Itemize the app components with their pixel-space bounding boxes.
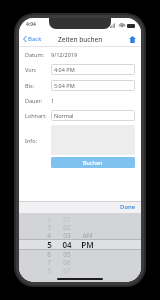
- staticText: 4:04: [26, 21, 36, 28]
- staticText: AM: [82, 231, 93, 239]
- staticText: 6: [47, 250, 51, 258]
- staticText: Zeiten buchen: [58, 35, 103, 44]
- button[interactable]: 5:04 PM: [51, 80, 135, 91]
- staticText: 3: [47, 223, 51, 231]
- staticText: 03: [63, 231, 71, 239]
- staticText: 02: [63, 223, 71, 231]
- staticText: 5: [47, 239, 52, 250]
- staticText: 4: [47, 231, 51, 239]
- staticText: Dauer:: [25, 97, 51, 104]
- staticText: Info:: [25, 137, 51, 144]
- staticText: 05: [63, 250, 71, 258]
- button[interactable]: 4:04 PM: [51, 64, 135, 75]
- button[interactable]: Home: [124, 33, 141, 46]
- staticText: Datum:: [25, 51, 51, 58]
- staticText: Buchen: [83, 159, 103, 166]
- staticText: 4:04 PM: [54, 66, 75, 73]
- staticText: Done: [120, 203, 136, 211]
- button[interactable]: Normal: [51, 110, 135, 121]
- staticText: 01: [63, 215, 71, 223]
- staticText: 1: [51, 97, 55, 104]
- staticText: 5:04 PM: [54, 82, 75, 89]
- staticText: 07: [63, 266, 71, 274]
- staticText: 2: [47, 215, 51, 223]
- staticText: Lohnart:: [25, 112, 51, 119]
- staticText: 8: [47, 266, 51, 274]
- staticText: 04: [62, 239, 72, 250]
- staticText: Bis:: [25, 82, 51, 89]
- staticText: 9/12/2019: [51, 51, 78, 58]
- button[interactable]: Done: [115, 201, 141, 213]
- staticText: PM: [81, 239, 94, 250]
- button[interactable]: 01: [57, 213, 77, 275]
- staticText: Back: [28, 35, 42, 43]
- staticText: Von:: [25, 66, 51, 73]
- button[interactable]: Back: [19, 33, 46, 45]
- staticText: 7: [47, 258, 51, 266]
- staticText: Normal: [54, 112, 74, 119]
- staticText: 06: [63, 258, 71, 266]
- button[interactable]: 2: [41, 213, 57, 275]
- button[interactable]: AM: [77, 213, 97, 275]
- button[interactable]: Buchen: [51, 157, 135, 168]
